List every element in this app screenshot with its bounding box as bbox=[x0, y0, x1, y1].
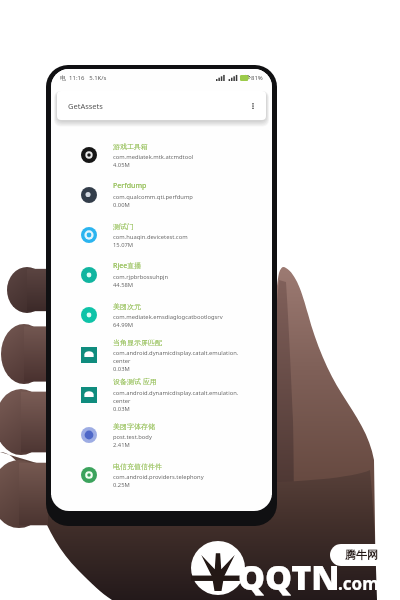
staticText: com.qualcomm.qti.perfdump bbox=[113, 193, 193, 201]
staticText: 设备测试 应用 bbox=[113, 377, 157, 387]
button[interactable]: 当角显示屏匹配 bbox=[51, 335, 272, 375]
staticText: 44.58M bbox=[113, 281, 134, 289]
button[interactable]: More options bbox=[246, 99, 260, 113]
staticText: 4.05M bbox=[113, 161, 130, 169]
button[interactable]: 游戏工具箱 bbox=[51, 135, 272, 175]
button[interactable]: Perfdump bbox=[51, 175, 272, 215]
staticText: Rjee直播 bbox=[113, 261, 142, 271]
button[interactable]: GetAssets bbox=[57, 91, 266, 120]
staticText: 美团次元 bbox=[113, 302, 141, 311]
staticText: 0.03M bbox=[113, 365, 130, 373]
staticText: Perfdump bbox=[113, 181, 147, 191]
staticText: com.mediatek.mtk.atcmdtool bbox=[113, 153, 194, 161]
button[interactable]: 测试门 bbox=[51, 215, 272, 255]
staticText: QQTN bbox=[238, 554, 340, 600]
staticText: 0.03M bbox=[113, 405, 130, 413]
staticText: 64.99M bbox=[113, 321, 134, 329]
staticText: 15.07M bbox=[113, 241, 134, 249]
staticText: 81% bbox=[251, 74, 263, 82]
button[interactable]: 美团字体存储 bbox=[51, 415, 272, 455]
staticText: post.test.body bbox=[113, 433, 152, 441]
staticText: 当角显示屏匹配 bbox=[113, 338, 162, 347]
staticText: com.android.dynamicdisplay.catalt.emulat… bbox=[113, 349, 239, 357]
staticText: 0.25M bbox=[113, 481, 130, 489]
button[interactable]: Rjee直播 bbox=[51, 255, 272, 295]
button[interactable]: 设备测试 应用 bbox=[51, 375, 272, 415]
staticText: .com bbox=[338, 572, 379, 595]
staticText: center bbox=[113, 357, 131, 365]
staticText: 游戏工具箱 bbox=[113, 142, 148, 151]
staticText: com.huaqin.devicetest.com bbox=[113, 233, 188, 241]
button[interactable]: 美团次元 bbox=[51, 295, 272, 335]
staticText: 美团字体存储 bbox=[113, 422, 155, 431]
staticText: 测试门 bbox=[113, 222, 134, 231]
staticText: com.mediatek.emsdiaglogcatbootlogsrv bbox=[113, 313, 223, 321]
staticText: 腾牛网 bbox=[345, 548, 378, 562]
staticText: com.android.dynamicdisplay.catalt.emulat… bbox=[113, 389, 239, 397]
staticText: GetAssets bbox=[68, 101, 103, 111]
button[interactable]: 电信充值信件件 bbox=[51, 455, 272, 495]
staticText: center bbox=[113, 397, 131, 405]
staticText: com.android.providers.telephony bbox=[113, 473, 204, 481]
staticText: 电信充值信件件 bbox=[113, 462, 162, 471]
staticText: 电 11:16 5.1K/s bbox=[60, 74, 107, 82]
staticText: 0.00M bbox=[113, 201, 130, 209]
staticText: com.rjpbrbossuhpjn bbox=[113, 273, 169, 281]
staticText: 2.41M bbox=[113, 441, 130, 449]
